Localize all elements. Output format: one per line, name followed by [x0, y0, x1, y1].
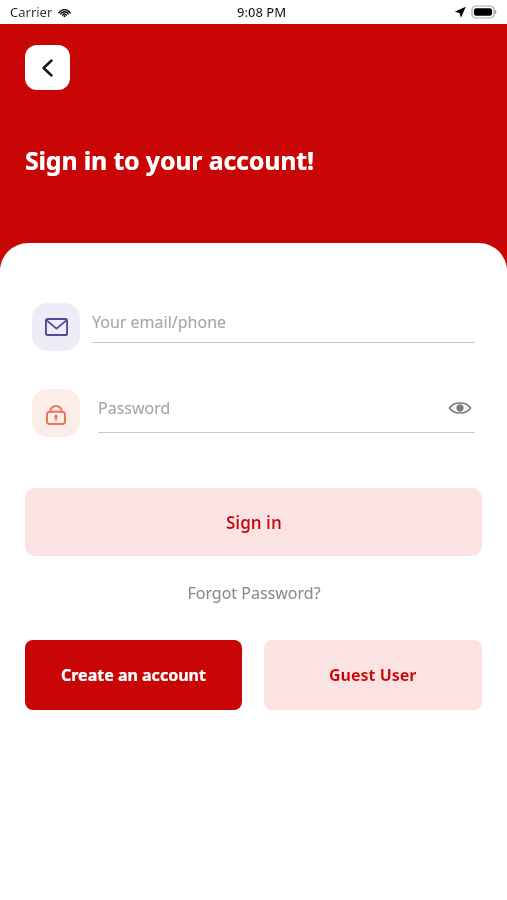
- button[interactable]: Guest User: [264, 640, 482, 710]
- staticText: Create an account: [61, 664, 206, 686]
- button[interactable]: Create an account: [25, 640, 242, 710]
- button[interactable]: Show password: [445, 393, 475, 423]
- button[interactable]: Your email/phone: [32, 303, 475, 351]
- staticText: Carrier: [10, 3, 53, 21]
- button[interactable]: Sign in: [25, 488, 482, 556]
- button[interactable]: Password: [32, 389, 475, 437]
- staticText: Your email/phone: [92, 311, 227, 333]
- button[interactable]: Forgot Password?: [177, 576, 331, 610]
- staticText: 9:08 PM: [237, 3, 287, 21]
- staticText: Sign in to your account!: [25, 143, 314, 177]
- staticText: Forgot Password?: [187, 582, 321, 604]
- staticText: Guest User: [329, 664, 417, 686]
- staticText: Password: [98, 397, 171, 419]
- staticText: Sign in: [226, 511, 282, 534]
- button[interactable]: Back: [25, 45, 70, 90]
